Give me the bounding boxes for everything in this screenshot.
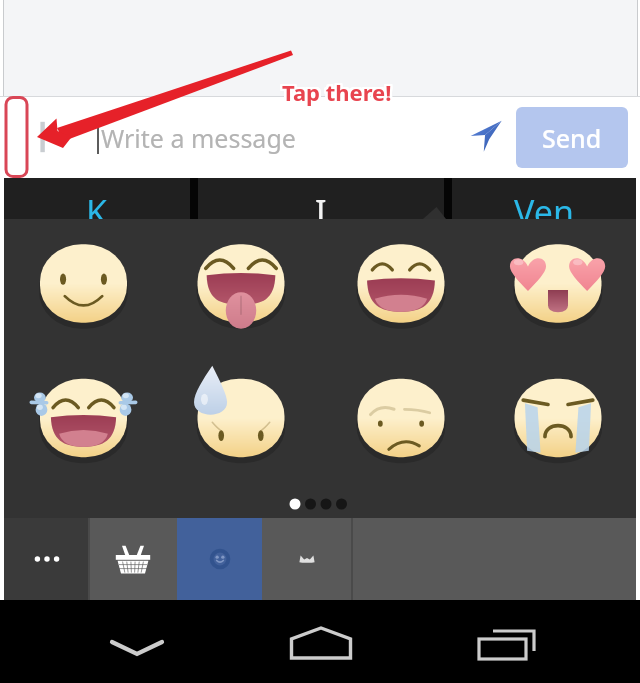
button[interactable]: Recent apps xyxy=(463,618,543,666)
staticText: Tap there! xyxy=(283,77,393,107)
button[interactable]: Back xyxy=(97,618,177,666)
staticText: Tap there! xyxy=(280,76,390,106)
staticText: Tap there! xyxy=(283,78,393,108)
staticText: Tap there! xyxy=(281,75,391,105)
button[interactable]: Stickers xyxy=(89,518,177,600)
staticText: Tap there! xyxy=(281,76,391,106)
button[interactable]: Send xyxy=(516,107,628,168)
button[interactable]: K xyxy=(4,178,190,219)
staticText: I xyxy=(315,189,327,230)
staticText: Tap there! xyxy=(281,78,391,108)
staticText: Send xyxy=(542,121,602,155)
staticText: Tap there! xyxy=(284,76,394,106)
button[interactable]: Emoji keyboard xyxy=(26,114,66,160)
button[interactable]: Send location xyxy=(470,120,502,152)
staticText: Tap there! xyxy=(282,77,392,107)
staticText: Tap there! xyxy=(284,78,394,108)
button[interactable]: More options xyxy=(4,518,89,600)
staticText: Tap there! xyxy=(282,76,392,106)
button[interactable]: Ven xyxy=(452,178,636,219)
staticText: Tap there! xyxy=(284,75,394,105)
staticText: Tap there! xyxy=(282,75,392,105)
staticText: Tap there! xyxy=(283,75,393,105)
staticText: Tap there! xyxy=(280,75,390,105)
staticText: Tap there! xyxy=(283,76,393,106)
button[interactable]: I xyxy=(198,178,444,219)
button[interactable]: Cat emoji xyxy=(262,518,351,600)
button[interactable]: Home xyxy=(281,618,361,666)
staticText: Ven xyxy=(514,189,574,230)
staticText: Tap there! xyxy=(280,77,390,107)
staticText: Tap there! xyxy=(281,79,391,109)
button[interactable]: Emoji xyxy=(177,518,262,600)
staticText: Tap there! xyxy=(284,79,394,109)
staticText: Tap there! xyxy=(280,79,390,109)
staticText: K xyxy=(86,189,108,230)
staticText: Tap there! xyxy=(280,78,390,108)
staticText: Tap there! xyxy=(283,79,393,109)
staticText: Tap there! xyxy=(284,77,394,107)
staticText: Tap there! xyxy=(281,77,391,107)
staticText: Write a message xyxy=(101,121,296,155)
staticText: Tap there! xyxy=(282,79,392,109)
staticText: Tap there! xyxy=(282,78,392,108)
